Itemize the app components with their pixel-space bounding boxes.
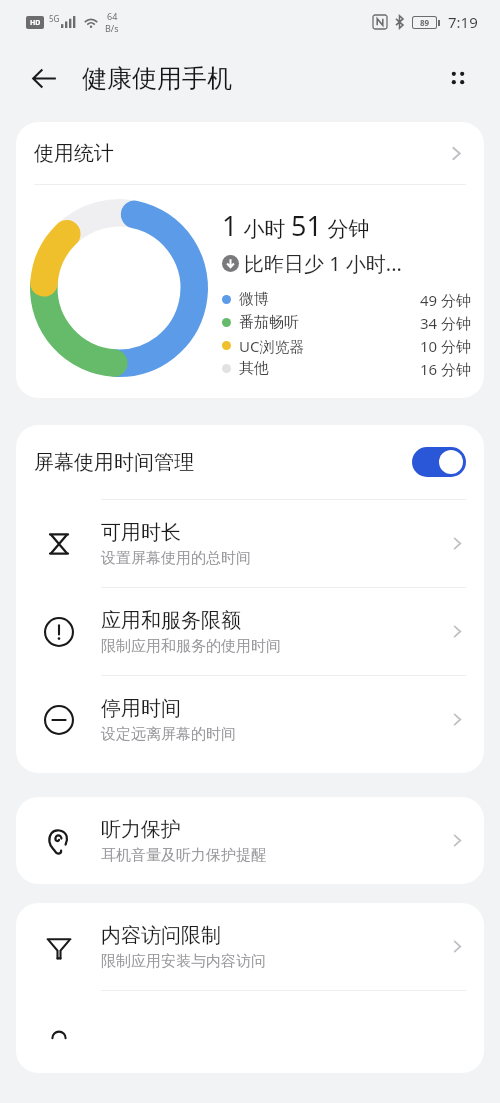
staticText: B/s [105, 22, 119, 34]
staticText: 听力保护 [101, 817, 181, 842]
button[interactable] [16, 1013, 484, 1073]
button[interactable]: 应用和服务限额 [16, 588, 484, 675]
button[interactable]: 内容访问限制 [16, 903, 484, 990]
staticText: 小时 [238, 214, 291, 243]
staticText: 51 [291, 207, 322, 244]
button[interactable]: 使用统计 [16, 122, 484, 184]
staticText: 停用时间 [101, 696, 181, 721]
staticText: 5G [49, 13, 60, 24]
button[interactable]: More options [432, 52, 484, 104]
staticText: 49 分钟 [420, 290, 472, 310]
button[interactable]: 听力保护 [16, 797, 484, 884]
staticText: 应用和服务限额 [101, 608, 241, 633]
staticText: 番茄畅听 [239, 313, 420, 332]
staticText: 可用时长 [101, 520, 181, 545]
staticText: 内容访问限制 [101, 923, 221, 948]
staticText: 10 分钟 [420, 336, 472, 356]
staticText: 7:19 [448, 12, 478, 32]
button[interactable]: 可用时长 [16, 500, 484, 587]
button[interactable]: Back [18, 52, 70, 104]
staticText: 耳机音量及听力保护提醒 [101, 846, 266, 865]
button[interactable]: 停用时间 [16, 676, 484, 763]
staticText: 屏幕使用时间管理 [34, 450, 412, 475]
staticText: 89 [420, 17, 430, 28]
staticText: 分钟 [322, 214, 370, 243]
staticText: UC浏览器 [239, 336, 420, 356]
staticText: 健康使用手机 [82, 63, 232, 94]
staticText: 其他 [239, 359, 420, 378]
staticText: HD [30, 18, 41, 28]
button[interactable]: Screen time toggle [412, 447, 466, 477]
staticText: 1 [222, 207, 238, 244]
staticText: 比昨日少 1 小时... [244, 250, 402, 277]
staticText: 限制应用和服务的使用时间 [101, 637, 281, 656]
staticText: 微博 [239, 290, 420, 309]
staticText: 使用统计 [34, 141, 447, 166]
button[interactable]: 屏幕使用时间管理 [16, 425, 484, 499]
staticText: 设定远离屏幕的时间 [101, 725, 236, 744]
staticText: 设置屏幕使用的总时间 [101, 549, 251, 568]
staticText: 64 [107, 10, 118, 22]
staticText: 限制应用安装与内容访问 [101, 952, 266, 971]
staticText: 34 分钟 [420, 313, 472, 333]
staticText: 16 分钟 [420, 359, 472, 379]
